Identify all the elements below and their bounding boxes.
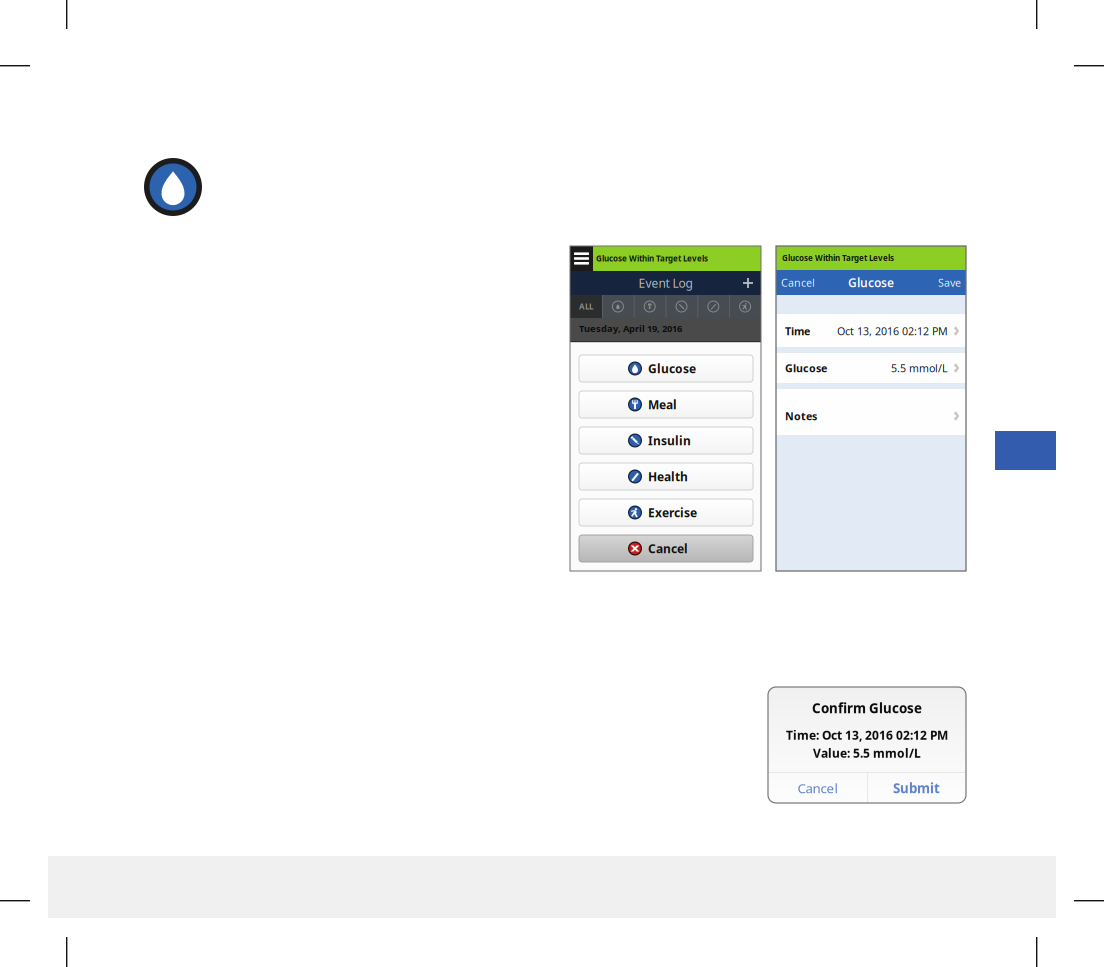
staticText: Confirm Glucose xyxy=(812,699,922,717)
staticText: Exercise xyxy=(648,504,697,520)
button[interactable]: Cancel xyxy=(781,270,817,295)
staticText: Value: 5.5 mmol/L xyxy=(813,745,921,761)
button[interactable]: Cancel xyxy=(768,773,866,803)
staticText: Cancel xyxy=(648,540,688,556)
button[interactable]: Filter 1 xyxy=(602,295,634,318)
staticText: Event Log xyxy=(638,275,692,291)
staticText: Meal xyxy=(648,396,677,412)
button[interactable]: Submit xyxy=(867,773,965,803)
button[interactable]: Filter 2 xyxy=(634,295,666,318)
staticText: Glucose xyxy=(848,274,894,290)
staticText: Glucose xyxy=(648,360,696,376)
button[interactable]: Insulin xyxy=(579,427,753,454)
staticText: Time xyxy=(785,324,810,338)
staticText: Time: Oct 13, 2016 02:12 PM xyxy=(786,727,948,743)
staticText: Tuesday, April 19, 2016 xyxy=(579,322,682,335)
staticText: Cancel xyxy=(781,275,815,290)
staticText: Save xyxy=(938,275,961,290)
button[interactable]: Add event xyxy=(738,273,758,293)
staticText: ALL xyxy=(579,301,593,312)
staticText: Submit xyxy=(893,779,940,797)
button[interactable]: Health xyxy=(579,463,753,490)
button[interactable]: Filter 3 xyxy=(666,295,697,318)
staticText: Cancel xyxy=(797,779,837,797)
staticText: Insulin xyxy=(648,432,691,448)
button[interactable]: Notes xyxy=(776,389,966,435)
button[interactable]: Glucose xyxy=(776,353,966,383)
staticText: 5.5 mmol/L xyxy=(891,361,948,375)
button[interactable]: ALL xyxy=(570,295,602,318)
button[interactable]: Save xyxy=(931,270,961,295)
staticText: Notes xyxy=(785,409,817,423)
button[interactable]: Glucose xyxy=(579,355,753,382)
button[interactable]: Filter 5 xyxy=(729,295,761,318)
button[interactable]: Time xyxy=(776,314,966,347)
staticText: Glucose Within Target Levels xyxy=(782,253,894,263)
button[interactable]: Exercise xyxy=(579,499,753,526)
staticText: Glucose Within Target Levels xyxy=(596,253,708,264)
staticText: Oct 13, 2016 02:12 PM xyxy=(837,324,948,338)
button[interactable]: Cancel xyxy=(579,535,753,562)
button[interactable]: Filter 4 xyxy=(697,295,729,318)
button[interactable]: Meal xyxy=(579,391,753,418)
button[interactable]: Menu xyxy=(570,246,593,271)
staticText: Health xyxy=(648,468,688,484)
staticText: Glucose xyxy=(785,361,827,375)
